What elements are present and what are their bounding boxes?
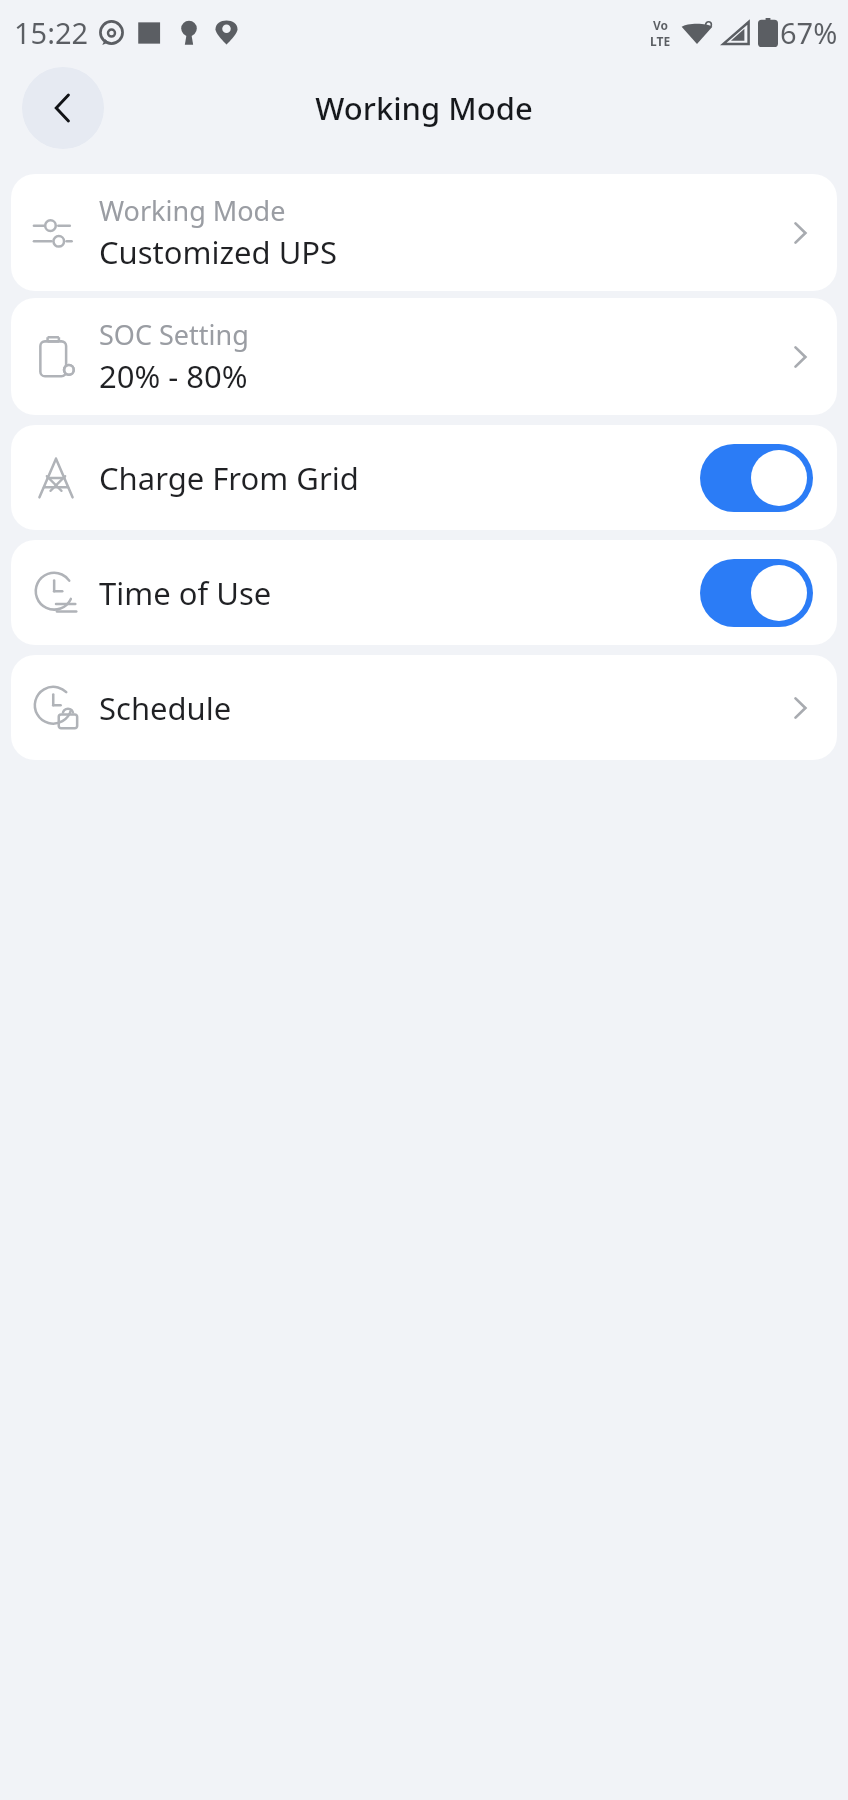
staticText: Schedule: [99, 687, 785, 729]
button[interactable]: Toggle: [700, 444, 813, 512]
button[interactable]: Back: [22, 67, 104, 149]
staticText: Customized UPS: [99, 231, 338, 273]
staticText: Working Mode: [99, 192, 286, 229]
staticText: Vo: [653, 17, 669, 33]
staticText: Working Mode: [315, 87, 533, 129]
button[interactable]: SOC Setting: [11, 298, 837, 415]
staticText: Charge From Grid: [99, 457, 700, 499]
button[interactable]: Schedule: [11, 655, 837, 760]
button[interactable]: Charge From Grid: [11, 425, 837, 530]
staticText: 15:22: [14, 13, 89, 52]
staticText: LTE: [650, 33, 671, 49]
staticText: 67%: [780, 13, 838, 52]
button[interactable]: Toggle: [700, 559, 813, 627]
button[interactable]: Time of Use: [11, 540, 837, 645]
staticText: Time of Use: [99, 572, 700, 614]
button[interactable]: Working Mode: [11, 174, 837, 291]
staticText: 20% - 80%: [99, 355, 248, 397]
staticText: SOC Setting: [99, 316, 249, 353]
